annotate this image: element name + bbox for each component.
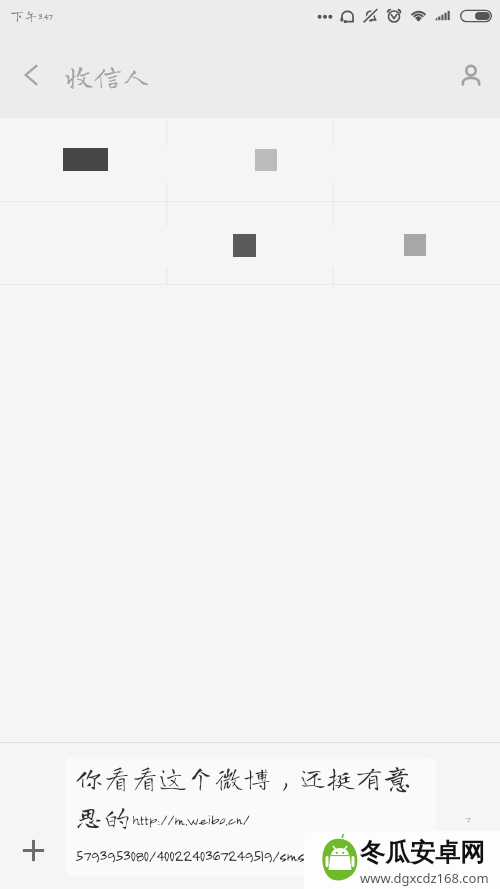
button[interactable]: 你看看这个微博，还挺有意 (65, 757, 436, 876)
staticText: 你看看这个微博，还挺有意 (75, 763, 412, 791)
staticText: 7 (465, 813, 471, 825)
staticText: http://m.weibo.cn/ (132, 811, 250, 828)
button[interactable]: Back (0, 32, 58, 118)
staticText: 收信人 (65, 61, 151, 89)
button[interactable] (0, 118, 166, 201)
staticText: 下午3:47 (10, 9, 53, 23)
button[interactable] (166, 118, 333, 201)
staticText: 5793953080/4002240367249519/sms (75, 846, 305, 865)
button[interactable] (166, 202, 333, 284)
button[interactable] (333, 202, 500, 284)
staticText: 思的 (75, 802, 132, 830)
button[interactable]: Choose contacts (442, 32, 500, 118)
button[interactable]: Add attachment (11, 828, 55, 872)
staticText: www.dgxcdz168.com (360, 869, 489, 887)
staticText: 冬瓜安卓网 (360, 837, 485, 868)
